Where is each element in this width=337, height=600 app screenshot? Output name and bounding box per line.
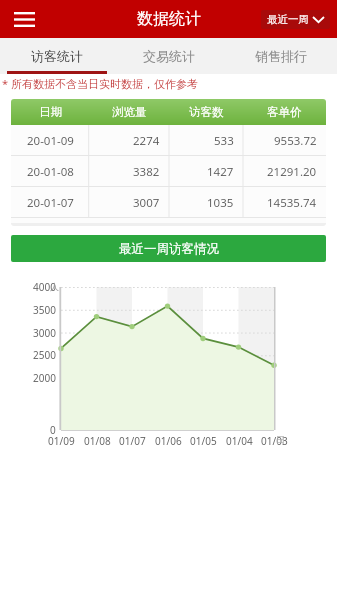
staticText: 01/06 — [155, 434, 182, 448]
staticText: 1427 — [207, 164, 234, 180]
staticText: 3000 — [33, 326, 56, 340]
staticText: 人 — [50, 281, 59, 292]
staticText: 最近一周访客情况 — [119, 241, 219, 257]
staticText: 1035 — [207, 195, 234, 211]
staticText: 最近一周 — [267, 13, 309, 26]
button[interactable]: 访客统计 — [0, 38, 113, 74]
staticText: 533 — [214, 133, 234, 149]
staticText: 日 — [276, 434, 285, 445]
staticText: 数据统计 — [137, 9, 201, 29]
staticText: 20-01-07 — [27, 195, 74, 211]
staticText: 01/07 — [119, 434, 146, 448]
button[interactable]: Menu — [6, 1, 42, 37]
button[interactable]: 销售排行 — [225, 38, 337, 74]
staticText: 访客数 — [189, 105, 224, 119]
staticText: 客单价 — [267, 105, 302, 119]
staticText: 销售排行 — [255, 48, 307, 64]
staticText: * 所有数据不含当日实时数据，仅作参考 — [2, 76, 198, 91]
staticText: 2274 — [133, 133, 160, 149]
staticText: 0 — [50, 423, 56, 437]
button[interactable]: 最近一周访客情况 — [11, 235, 326, 262]
staticText: 2000 — [33, 371, 56, 385]
staticText: 3500 — [33, 303, 56, 317]
staticText: 01/04 — [226, 434, 253, 448]
staticText: 20-01-08 — [27, 164, 74, 180]
staticText: 4000 — [33, 280, 56, 294]
staticText: 访客统计 — [31, 48, 83, 64]
staticText: 3382 — [133, 164, 160, 180]
button[interactable]: 最近一周 — [261, 10, 330, 29]
staticText: 交易统计 — [143, 48, 195, 64]
staticText: 21291.20 — [267, 164, 317, 180]
staticText: 9553.72 — [274, 133, 317, 149]
staticText: 01/09 — [48, 434, 75, 448]
staticText: 14535.74 — [267, 195, 317, 211]
staticText: 01/05 — [190, 434, 217, 448]
staticText: 日期 — [39, 105, 62, 119]
staticText: 浏览量 — [112, 105, 147, 119]
staticText: 2500 — [33, 348, 56, 362]
staticText: 3007 — [133, 195, 160, 211]
staticText: 01/03 — [261, 434, 288, 448]
staticText: 01/08 — [84, 434, 111, 448]
button[interactable]: 交易统计 — [113, 38, 225, 74]
staticText: 20-01-09 — [27, 133, 74, 149]
